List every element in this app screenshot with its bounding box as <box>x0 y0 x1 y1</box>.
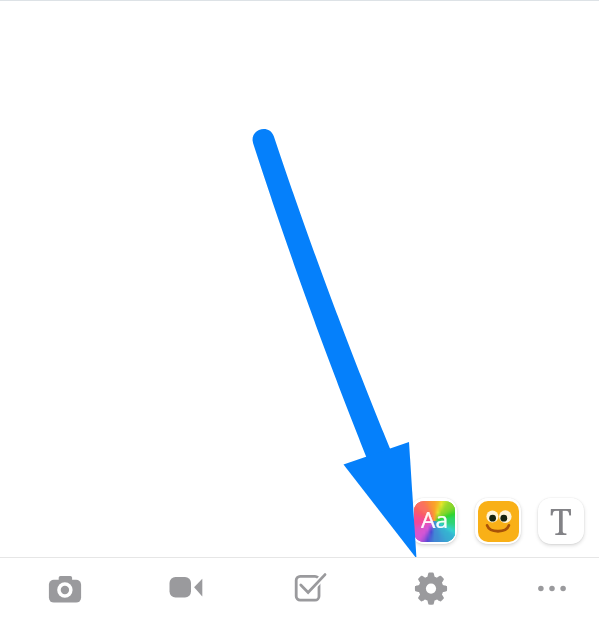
button[interactable]: Video call <box>158 560 214 616</box>
button[interactable]: More options <box>524 560 580 616</box>
button[interactable]: Emoji <box>475 498 521 544</box>
staticText: Aa <box>421 504 449 535</box>
button[interactable]: Camera <box>37 560 93 616</box>
button[interactable]: Settings <box>403 560 459 616</box>
button[interactable]: Text <box>538 498 584 544</box>
button[interactable]: Text formatting <box>411 498 457 544</box>
staticText: T <box>550 498 572 543</box>
button[interactable]: Tasks <box>280 560 336 616</box>
